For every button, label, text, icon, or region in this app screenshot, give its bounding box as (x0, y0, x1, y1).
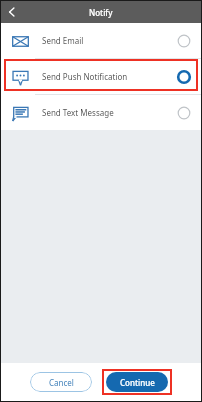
button[interactable]: Send Text Message (1, 95, 201, 130)
staticText: Send Text Message (42, 107, 177, 118)
button[interactable]: Send Push Notification (1, 59, 201, 94)
staticText: Send Email (42, 35, 177, 46)
staticText: Send Push Notification (42, 71, 177, 82)
button[interactable]: Back (1, 1, 23, 23)
staticText: Notify (89, 7, 113, 18)
button[interactable]: Cancel (30, 372, 92, 392)
button[interactable]: Continue (106, 372, 168, 392)
staticText: Continue (120, 377, 155, 388)
staticText: Cancel (49, 377, 74, 388)
button[interactable]: Send Email (1, 23, 201, 58)
